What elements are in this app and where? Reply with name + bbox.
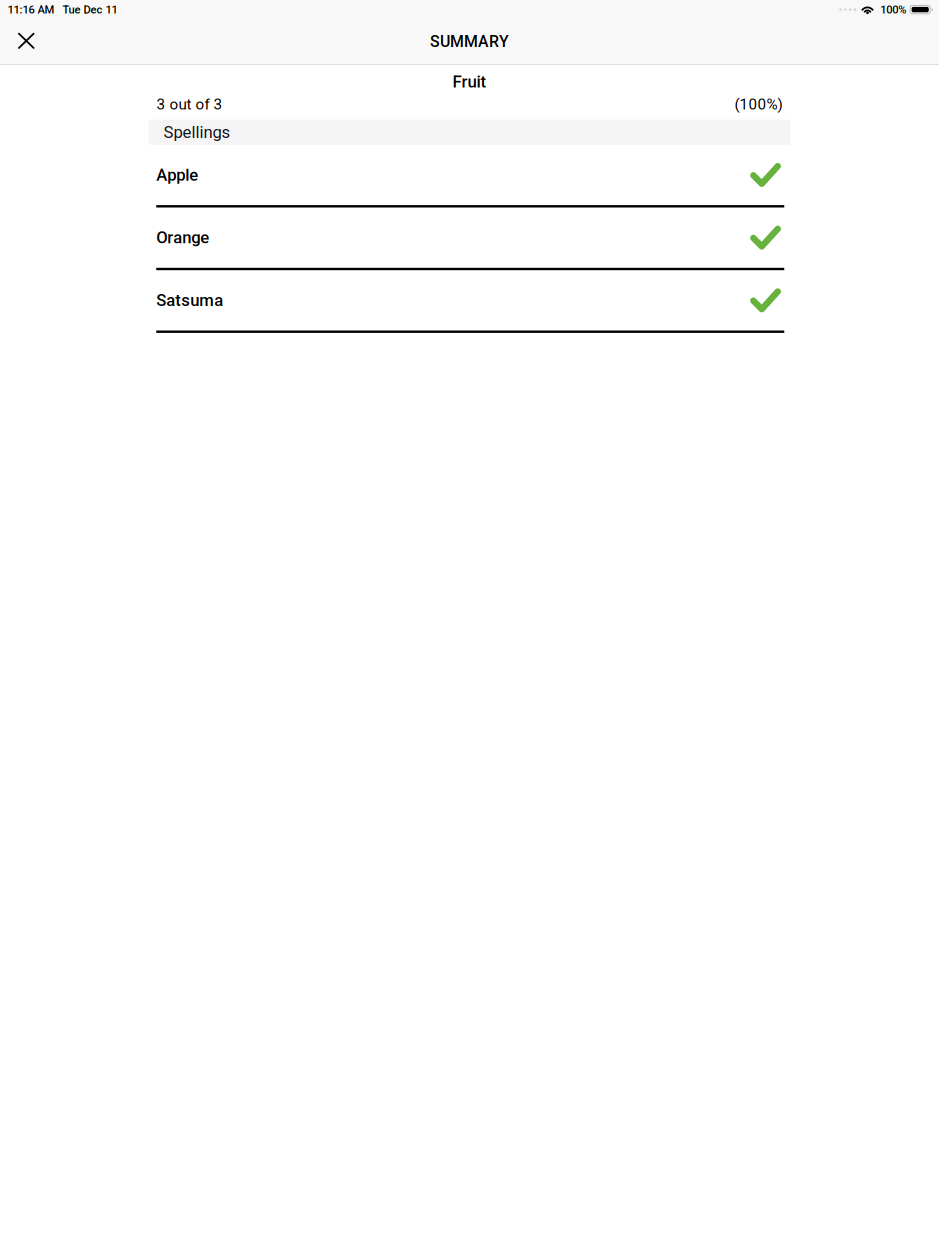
staticText: 100% [880,3,906,16]
staticText: Apple [156,165,198,185]
staticText: SUMMARY [430,32,509,51]
staticText: 11:16 AM [7,3,54,16]
staticText: Spellings [163,122,230,142]
staticText: Satsuma [156,291,223,310]
button[interactable]: Apple [149,145,790,207]
button[interactable]: Close [0,22,48,61]
staticText: Tue Dec 11 [62,3,117,16]
staticText: 3 out of 3 [156,95,222,113]
button[interactable]: Orange [149,207,790,270]
button[interactable]: Satsuma [149,270,790,333]
staticText: (100%) [734,95,782,113]
staticText: Orange [156,228,209,247]
staticText: Fruit [452,72,486,91]
